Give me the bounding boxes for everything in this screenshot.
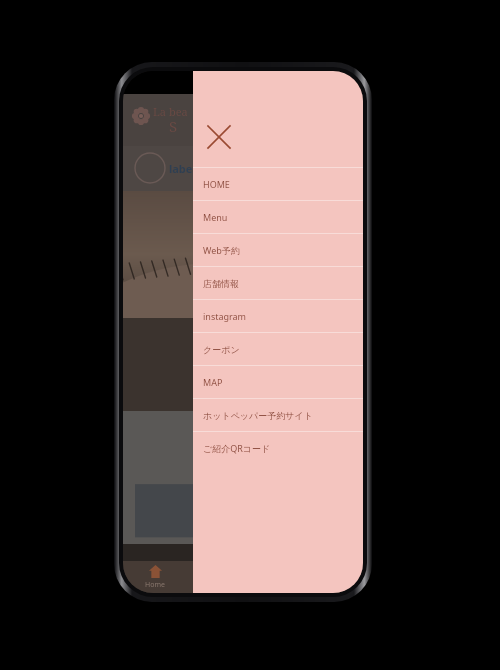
button[interactable]: クーポン [193,333,363,365]
button[interactable]: instagram [193,300,363,332]
button[interactable]: Menu [187,565,241,590]
staticText: Web予約 [203,244,240,256]
button[interactable]: Menu [193,201,363,233]
button[interactable]: Home [128,565,182,590]
staticText: 店舗情報 [203,278,239,289]
button[interactable]: MAP [193,366,363,398]
button[interactable]: 店舗情報 [193,267,363,299]
button[interactable]: HOME [193,168,363,200]
staticText: Menu [203,211,228,223]
staticText: S [169,116,178,136]
button[interactable]: Web予約 [193,234,363,266]
button[interactable]: Close menu [203,121,235,153]
staticText: labea [169,161,199,176]
staticText: instagram [203,310,247,322]
staticText: HOME [203,178,230,190]
staticText: ホットペッパー予約サイト [203,410,313,421]
button[interactable]: MAP [304,565,358,590]
staticText: MAP [203,376,223,388]
button[interactable]: ホットペッパー予約サイト [193,399,363,431]
staticText: クーポン [203,344,240,355]
staticText: Home [145,580,165,590]
staticText: ご紹介QRコード [203,442,271,454]
staticText: La bea [153,104,188,119]
button[interactable]: ご紹介QRコード [193,432,363,464]
